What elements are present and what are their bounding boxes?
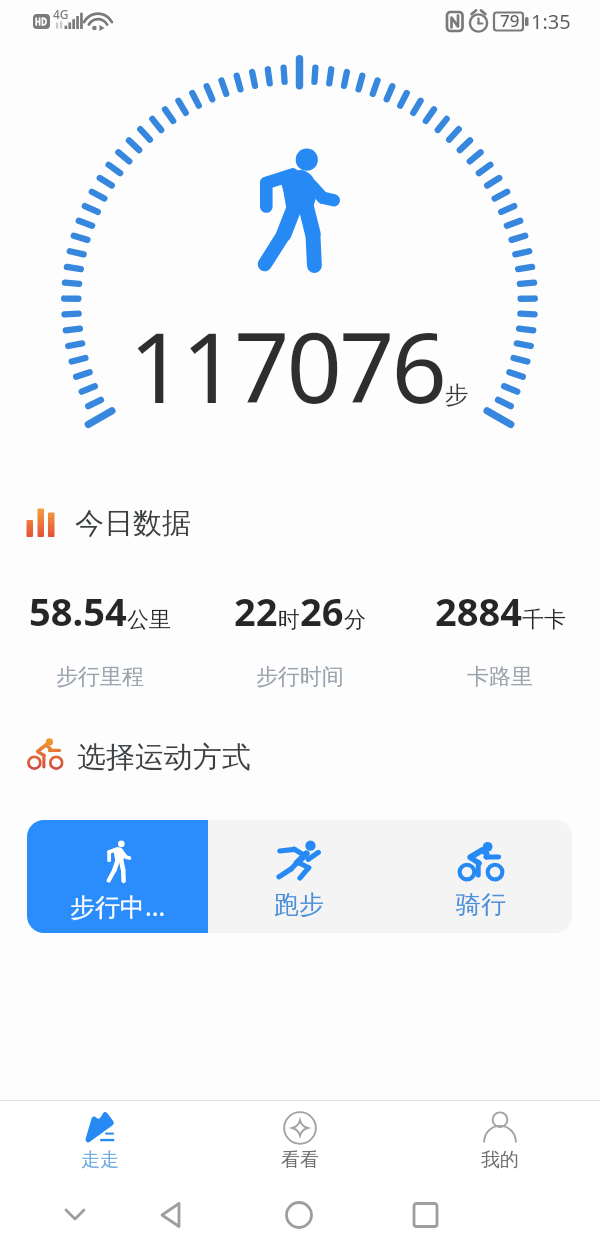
button[interactable]: 我的: [440, 1101, 560, 1186]
button[interactable]: 步行中...: [27, 820, 208, 933]
staticText: 26: [300, 585, 344, 637]
button[interactable]: 看看: [240, 1101, 360, 1186]
staticText: 2884: [435, 585, 522, 637]
staticText: 79: [500, 9, 520, 32]
staticText: 22: [234, 585, 278, 637]
staticText: 4G: [53, 6, 69, 22]
staticText: 时: [278, 606, 300, 634]
button[interactable]: 走走: [40, 1101, 160, 1186]
staticText: 步: [445, 380, 469, 410]
staticText: 我的: [481, 1148, 519, 1172]
button[interactable]: 跑步: [208, 820, 390, 933]
staticText: 卡路里: [467, 663, 533, 691]
staticText: 选择运动方式: [77, 739, 251, 776]
staticText: 今日数据: [75, 505, 191, 542]
staticText: 1:35: [531, 8, 571, 35]
staticText: 看看: [281, 1148, 319, 1172]
staticText: 公里: [127, 606, 171, 634]
staticText: 步行时间: [256, 663, 344, 691]
staticText: 骑行: [456, 889, 506, 920]
staticText: 跑步: [274, 889, 324, 920]
staticText: 步行中...: [70, 889, 166, 923]
staticText: 走走: [81, 1148, 119, 1172]
staticText: 千卡: [522, 606, 566, 634]
staticText: 分: [344, 606, 366, 634]
button[interactable]: 骑行: [390, 820, 572, 933]
staticText: 117076: [129, 299, 444, 431]
staticText: 58.54: [29, 585, 127, 637]
staticText: 步行里程: [56, 663, 144, 691]
